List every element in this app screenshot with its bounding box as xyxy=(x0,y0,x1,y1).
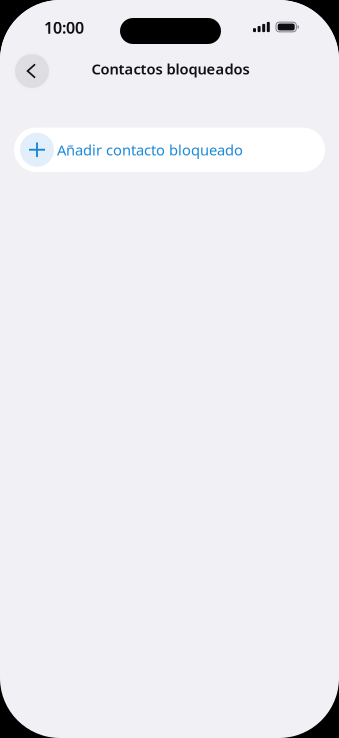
button[interactable]: Back xyxy=(14,53,50,89)
staticText: Añadir contacto bloqueado xyxy=(57,140,243,159)
button[interactable]: Añadir contacto bloqueado xyxy=(14,127,325,172)
staticText: Contactos bloqueados xyxy=(91,59,249,78)
staticText: 10:00 xyxy=(44,17,84,38)
